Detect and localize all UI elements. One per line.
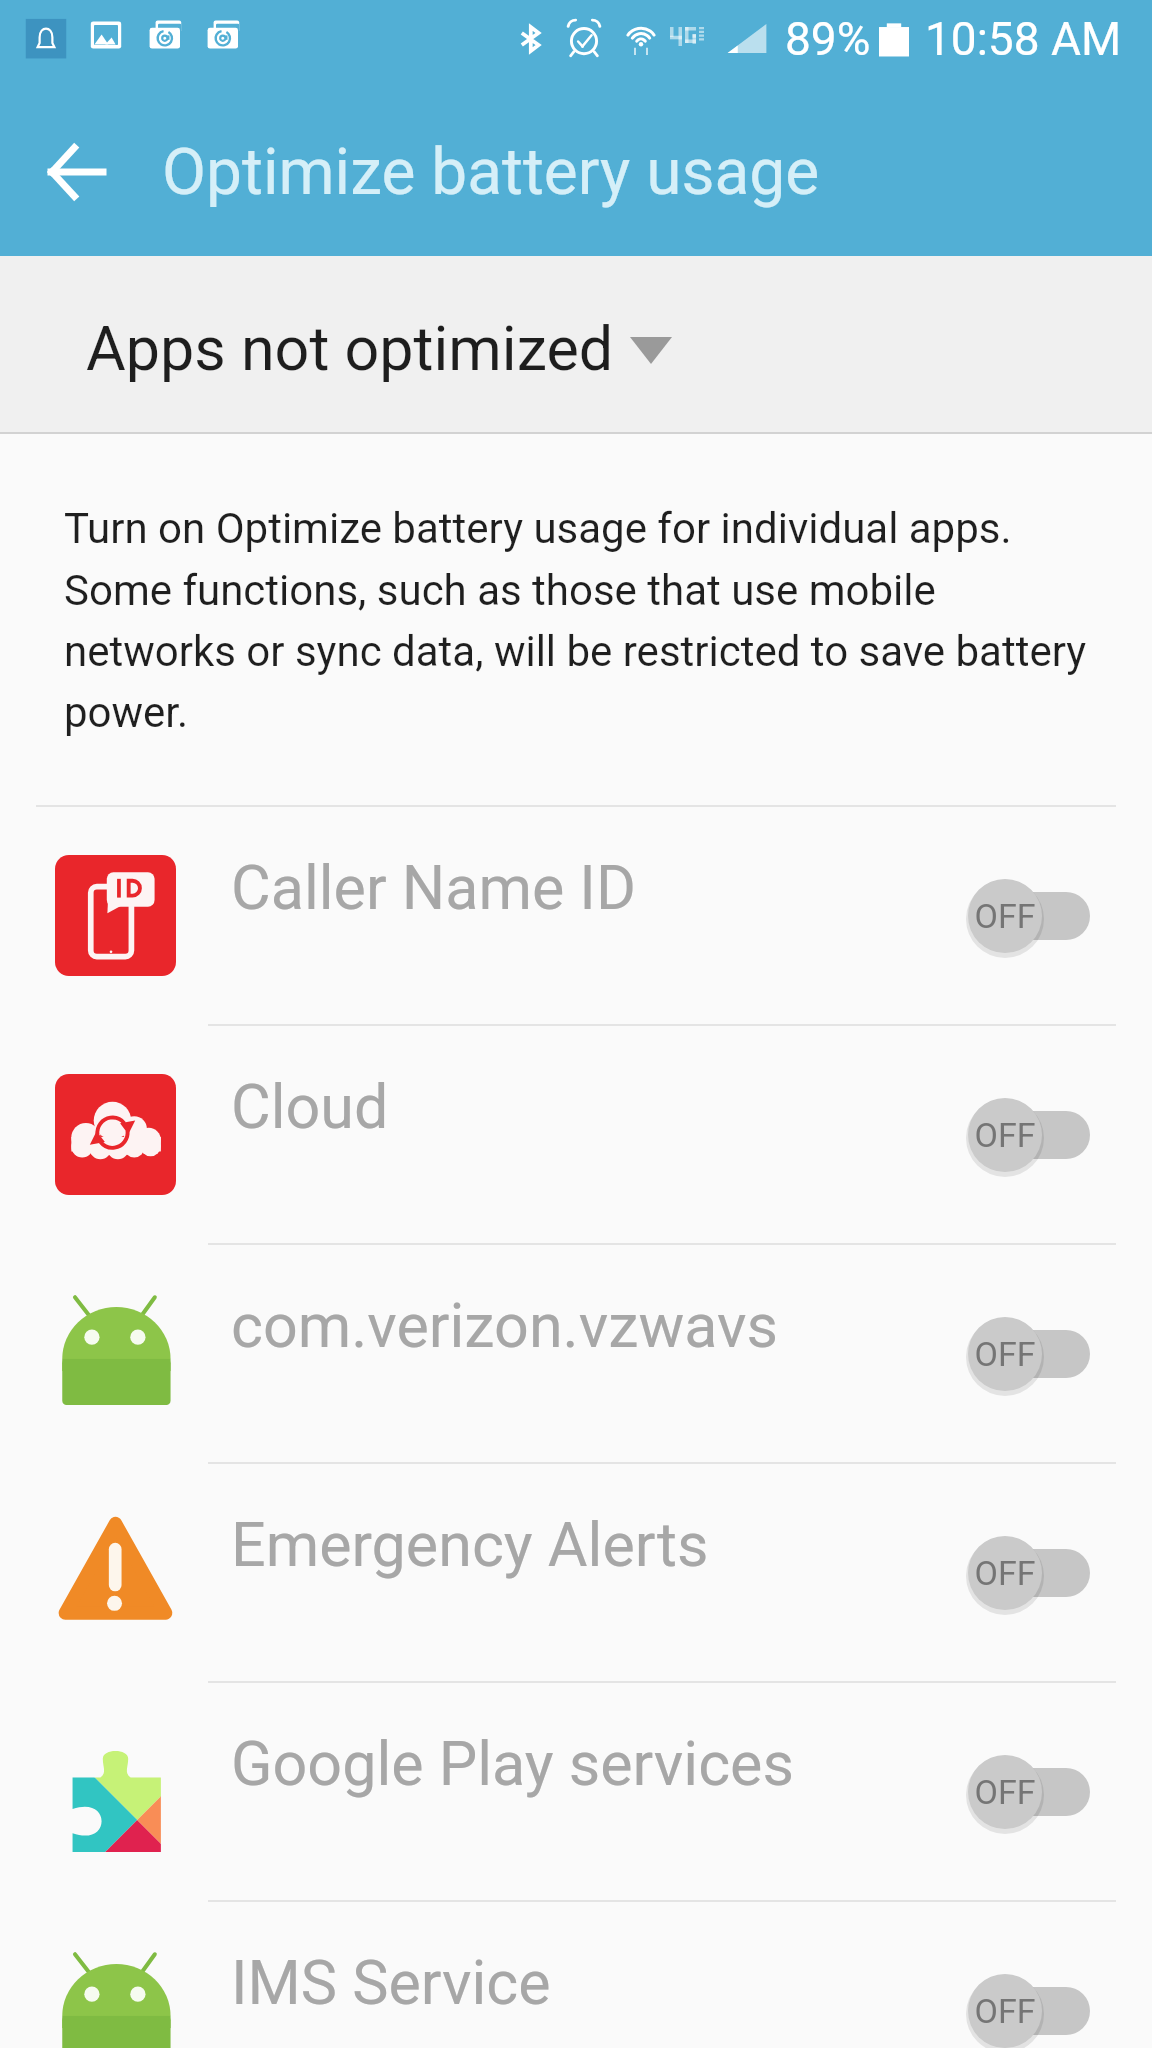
staticText: Caller Name ID [231,852,968,923]
staticText: 10:58 AM [925,12,1122,66]
staticText: com.verizon.vzwavs [231,1290,968,1361]
button[interactable]: Google Play services [0,1683,1152,1900]
button[interactable]: Apps not optimized [0,256,1152,434]
staticText: OFF [968,1334,1042,1374]
button[interactable]: IMS Service [0,1902,1152,2048]
staticText: OFF [968,896,1042,936]
staticText: 89% [785,12,871,66]
staticText: Apps not optimized [86,313,614,384]
staticText: Emergency Alerts [231,1509,968,1580]
staticText: Turn on Optimize battery usage for indiv… [64,504,1108,737]
button[interactable]: Caller Name ID [0,807,1152,1024]
button[interactable]: Navigate up [28,124,124,220]
button[interactable]: Cloud [0,1026,1152,1243]
staticText: Optimize battery usage [162,135,820,210]
staticText: IMS Service [231,1947,968,2018]
staticText: OFF [968,1991,1042,2031]
staticText: Google Play services [231,1728,968,1799]
staticText: Cloud [231,1071,968,1142]
button[interactable]: com.verizon.vzwavs [0,1245,1152,1462]
staticText: OFF [968,1553,1042,1593]
staticText: OFF [968,1772,1042,1812]
staticText: OFF [968,1115,1042,1155]
button[interactable]: Emergency Alerts [0,1464,1152,1681]
